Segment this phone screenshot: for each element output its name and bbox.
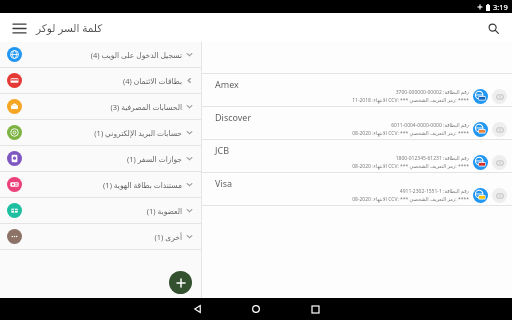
staticText: تسجيل الدخول على الويب (4) <box>27 50 182 60</box>
staticText: Discover <box>215 111 252 123</box>
button[interactable]: Back <box>189 300 207 318</box>
staticText: 3:19 <box>493 2 508 12</box>
button[interactable]: Card details <box>473 89 488 104</box>
staticText: رقم البطاقة: 1-1551-2302-4911 <box>399 188 469 195</box>
staticText: الانتهاء: 2020-08 CCV: *** رمز التعريف ا… <box>352 196 469 203</box>
button[interactable]: Add new entry <box>169 271 192 294</box>
button[interactable]: Open navigation menu <box>8 17 30 39</box>
staticText: رقم البطاقة: 61231-012345-1800 <box>395 155 469 162</box>
button[interactable]: تسجيل الدخول على الويب (4) <box>0 42 201 67</box>
staticText: جوازات السفر (1) <box>27 154 182 164</box>
button[interactable]: بطاقات الائتمان (4) <box>0 68 201 93</box>
button[interactable]: Recent apps <box>306 300 324 318</box>
staticText: الانتهاء: 2020-08 CCV: *** رمز التعريف ا… <box>352 130 469 137</box>
staticText: العضوية (1) <box>27 206 182 216</box>
button[interactable]: أخرى (1) <box>0 224 201 249</box>
staticText: الانتهاء: 2018-11 CCV: *** رمز التعريف ا… <box>352 97 469 104</box>
staticText: الحسابات المصرفية (3) <box>27 102 182 112</box>
button[interactable]: مستندات بطاقة الهوية (1) <box>0 172 201 197</box>
button[interactable]: Card details <box>473 155 488 170</box>
button[interactable]: Copy card number <box>492 155 507 170</box>
button[interactable]: Search <box>482 17 504 39</box>
button[interactable]: Copy card number <box>492 122 507 137</box>
staticText: الانتهاء: 2020-08 CCV: *** رمز التعريف ا… <box>352 163 469 170</box>
button[interactable]: الحسابات المصرفية (3) <box>0 94 201 119</box>
button[interactable]: Card details <box>473 122 488 137</box>
staticText: كلمة السر لوكر <box>36 21 103 35</box>
button[interactable]: العضوية (1) <box>0 198 201 223</box>
button[interactable]: Card details <box>473 188 488 203</box>
staticText: رقم البطاقة: 00002-000000-3700 <box>395 89 469 96</box>
button[interactable]: حسابات البريد الإلكتروني (1) <box>0 120 201 145</box>
staticText: Amex <box>215 78 239 90</box>
button[interactable]: Discover <box>202 107 512 139</box>
staticText: حسابات البريد الإلكتروني (1) <box>27 128 182 138</box>
staticText: مستندات بطاقة الهوية (1) <box>27 180 182 190</box>
staticText: رقم البطاقة: 0000-0000-0004-6011 <box>391 122 469 129</box>
button[interactable]: Visa <box>202 173 512 205</box>
staticText: JCB <box>215 144 229 156</box>
button[interactable]: Home <box>247 300 265 318</box>
staticText: بطاقات الائتمان (4) <box>27 76 182 86</box>
staticText: Visa <box>215 177 233 189</box>
button[interactable]: JCB <box>202 140 512 172</box>
button[interactable]: جوازات السفر (1) <box>0 146 201 171</box>
staticText: أخرى (1) <box>27 232 182 242</box>
button[interactable]: Copy card number <box>492 188 507 203</box>
button[interactable]: Amex <box>202 74 512 106</box>
button[interactable]: Copy card number <box>492 89 507 104</box>
